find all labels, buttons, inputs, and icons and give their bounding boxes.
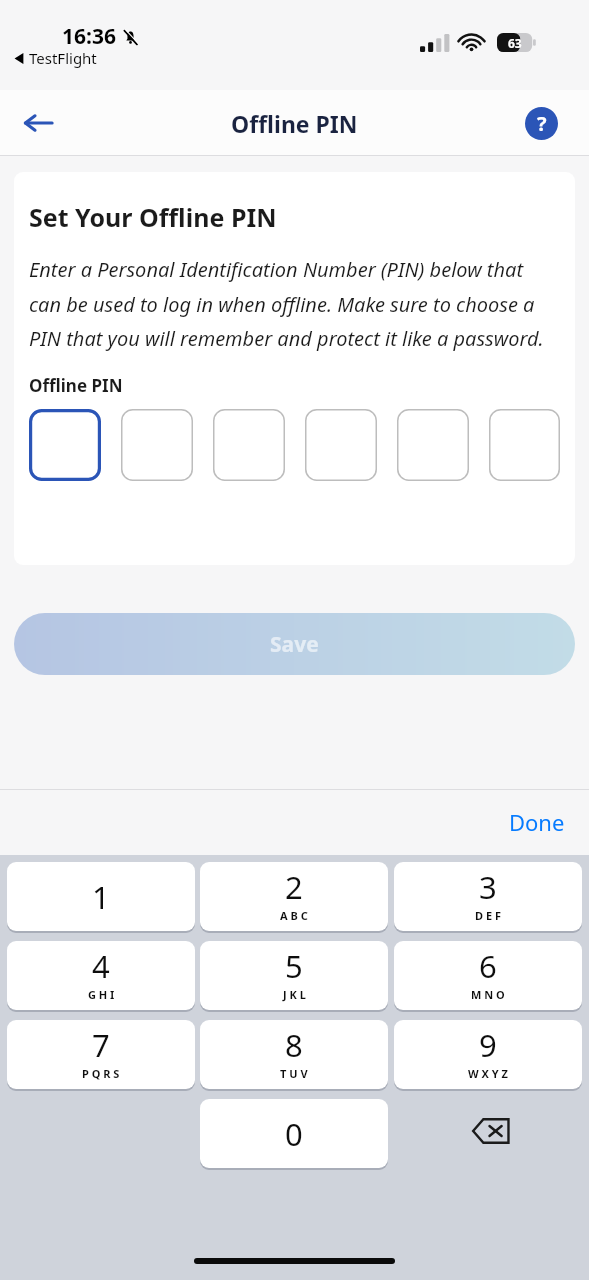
staticText: T U V	[280, 1066, 308, 1081]
staticText: ?	[537, 110, 547, 137]
staticText: Set Your Offline PIN	[29, 200, 277, 234]
staticText: 9	[479, 1024, 497, 1066]
button[interactable]: PIN digit	[121, 409, 193, 481]
staticText: TestFlight	[29, 48, 97, 68]
button[interactable]: PIN digit	[305, 409, 377, 481]
staticText: 6	[479, 945, 497, 987]
staticText: A B C	[280, 908, 308, 923]
staticText: W X Y Z	[468, 1066, 508, 1081]
staticText: Offline PIN	[231, 108, 358, 139]
button[interactable]: 2	[200, 862, 388, 931]
button[interactable]: 0	[200, 1099, 388, 1168]
staticText: 3	[479, 866, 497, 908]
staticText: Enter a Personal Identification Number (…	[29, 256, 560, 352]
staticText: 16:36	[62, 22, 116, 51]
button[interactable]: PIN digit	[213, 409, 285, 481]
staticText: 0	[285, 1113, 303, 1155]
button[interactable]: Help	[521, 103, 561, 143]
staticText: Offline PIN	[29, 374, 123, 397]
button[interactable]: PIN digit, focused	[29, 409, 101, 481]
staticText: 1	[92, 876, 110, 918]
staticText: 8	[285, 1024, 303, 1066]
staticText: 5	[285, 945, 303, 987]
staticText: M N O	[471, 987, 505, 1002]
button[interactable]: Done	[495, 799, 579, 845]
button[interactable]: 7	[7, 1020, 195, 1089]
staticText: 4	[92, 945, 110, 987]
button[interactable]: 5	[200, 941, 388, 1010]
staticText: Save	[270, 630, 319, 659]
button[interactable]: PIN digit	[489, 409, 560, 481]
button[interactable]: 6	[394, 941, 582, 1010]
staticText: 63	[508, 35, 522, 51]
staticText: D E F	[475, 908, 501, 923]
button[interactable]: Back	[18, 103, 58, 143]
button[interactable]: 3	[394, 862, 582, 931]
button[interactable]: PIN digit	[397, 409, 469, 481]
staticText: Done	[509, 807, 565, 837]
staticText: J K L	[283, 987, 306, 1002]
button[interactable]: 4	[7, 941, 195, 1010]
button[interactable]: 8	[200, 1020, 388, 1089]
staticText: P Q R S	[82, 1066, 120, 1081]
button[interactable]: 9	[394, 1020, 582, 1089]
staticText: G H I	[88, 987, 115, 1002]
button[interactable]: 1	[7, 862, 195, 931]
button[interactable]: Save	[14, 613, 575, 675]
staticText: 2	[285, 866, 303, 908]
staticText: 7	[92, 1024, 110, 1066]
button[interactable]: Backspace	[464, 1104, 518, 1158]
